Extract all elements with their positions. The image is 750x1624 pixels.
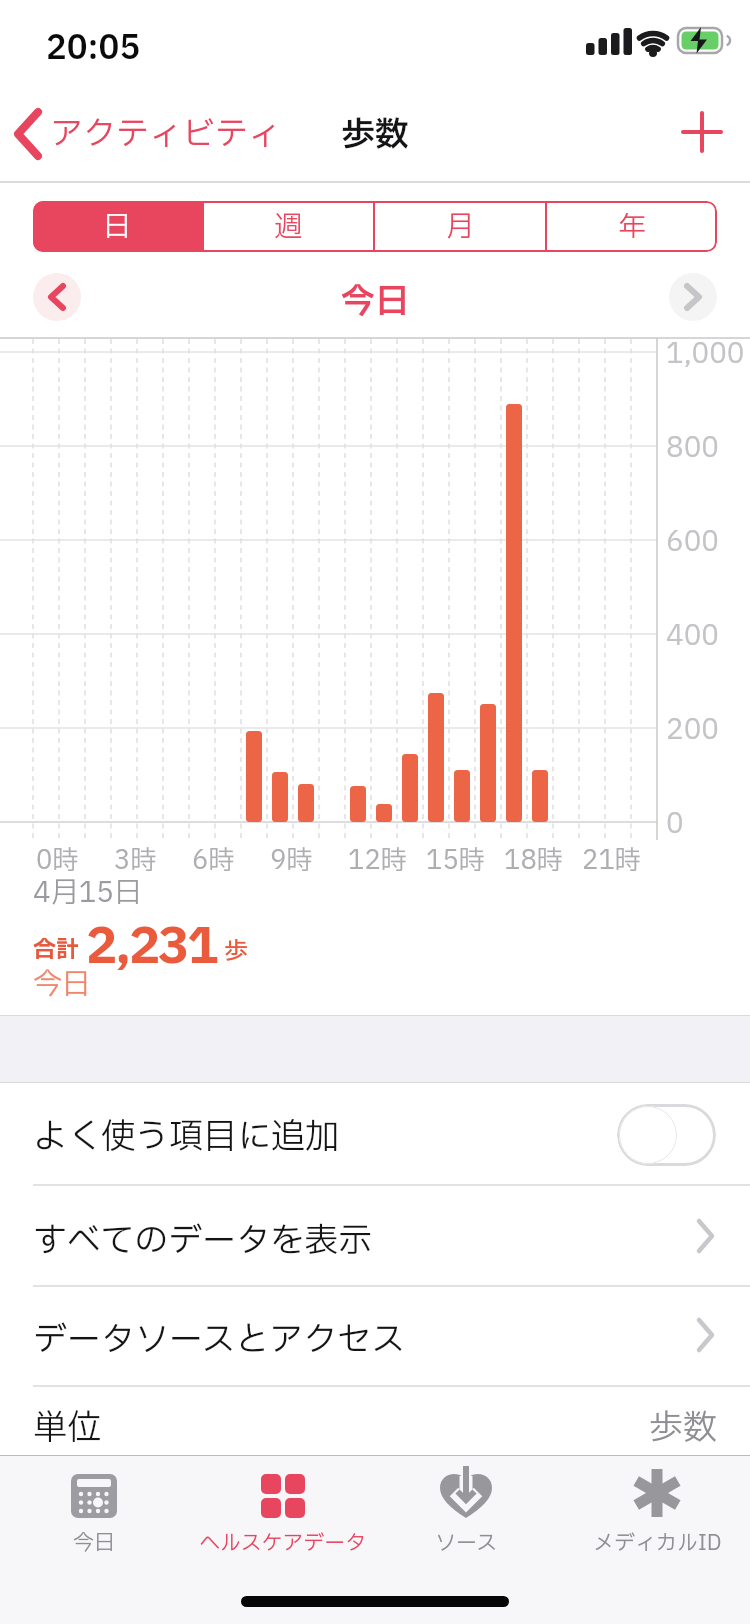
staticText: データソースとアクセス: [33, 1315, 405, 1366]
staticText: 単位: [33, 1403, 101, 1454]
button[interactable]: 月: [375, 201, 545, 252]
staticText: 0時: [36, 841, 79, 880]
staticText: 12時: [348, 841, 407, 880]
staticText: 200: [666, 709, 719, 751]
staticText: 400: [666, 615, 719, 657]
button[interactable]: 週: [204, 201, 373, 252]
button[interactable]: 単位: [0, 1387, 750, 1455]
staticText: 21時: [582, 841, 641, 880]
button[interactable]: よく使う項目に追加: [0, 1083, 750, 1185]
button[interactable]: [586, 1460, 728, 1568]
staticText: 4月15日: [33, 872, 142, 914]
staticText: 今日: [33, 963, 92, 1006]
staticText: すべてのデータを表示: [33, 1216, 373, 1267]
staticText: 2,231: [86, 910, 217, 985]
staticText: 20:05: [46, 24, 141, 73]
button[interactable]: [617, 1104, 716, 1166]
staticText: 年: [618, 206, 647, 248]
staticText: ソース: [435, 1528, 497, 1559]
staticText: 0: [666, 803, 684, 845]
staticText: 月: [446, 206, 475, 248]
button[interactable]: [24, 1460, 164, 1568]
button[interactable]: [33, 273, 81, 321]
staticText: 歩: [224, 934, 248, 970]
staticText: 9時: [270, 841, 313, 880]
staticText: 歩数: [649, 1403, 717, 1454]
button[interactable]: データソースとアクセス: [0, 1287, 750, 1385]
staticText: 週: [274, 206, 303, 248]
button[interactable]: [669, 273, 717, 321]
staticText: 3時: [114, 841, 157, 880]
button[interactable]: 日: [33, 201, 202, 252]
staticText: よく使う項目に追加: [33, 1112, 339, 1163]
staticText: 6時: [192, 841, 235, 880]
staticText: メディカルID: [593, 1528, 722, 1559]
staticText: 1,000: [666, 333, 745, 375]
staticText: アクティビティ: [50, 110, 281, 159]
staticText: 今日: [73, 1528, 115, 1559]
staticText: 今日: [341, 277, 409, 328]
staticText: 18時: [504, 841, 563, 880]
button[interactable]: すべてのデータを表示: [0, 1186, 750, 1286]
staticText: 合計: [33, 933, 79, 967]
staticText: ヘルスケアデータ: [199, 1528, 367, 1559]
button[interactable]: [396, 1460, 536, 1568]
button[interactable]: [672, 102, 732, 162]
staticText: 600: [666, 521, 719, 563]
button[interactable]: アクティビティ: [10, 104, 280, 164]
staticText: 15時: [426, 841, 485, 880]
button[interactable]: 年: [547, 201, 717, 252]
staticText: 歩数: [341, 110, 409, 161]
button[interactable]: [188, 1460, 378, 1568]
staticText: 800: [666, 427, 719, 469]
staticText: 日: [103, 206, 132, 248]
